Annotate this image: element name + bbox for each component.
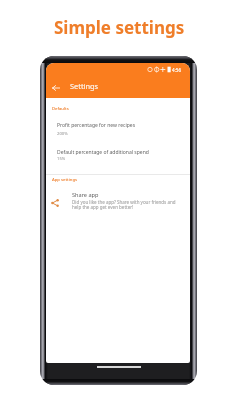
staticText: 15% bbox=[57, 156, 66, 162]
staticText: Settings bbox=[70, 81, 99, 91]
staticText: 200% bbox=[57, 131, 68, 137]
button[interactable]: Profit percentage for new recipes bbox=[46, 118, 190, 139]
staticText: Profit percentage for new recipes bbox=[57, 122, 136, 129]
button[interactable]: Share app bbox=[46, 190, 190, 214]
button[interactable]: Back bbox=[51, 83, 61, 93]
staticText: Share app bbox=[72, 191, 99, 199]
button[interactable]: Default percentage of additional spend bbox=[46, 145, 190, 166]
staticText: Simple settings bbox=[54, 16, 185, 39]
staticText: 4:56 bbox=[172, 67, 182, 73]
staticText: Did you like the app? Share with your fr… bbox=[72, 199, 176, 211]
staticText: Default percentage of additional spend bbox=[57, 149, 149, 156]
staticText: Defaults bbox=[52, 106, 69, 112]
staticText: App settings bbox=[52, 177, 78, 183]
